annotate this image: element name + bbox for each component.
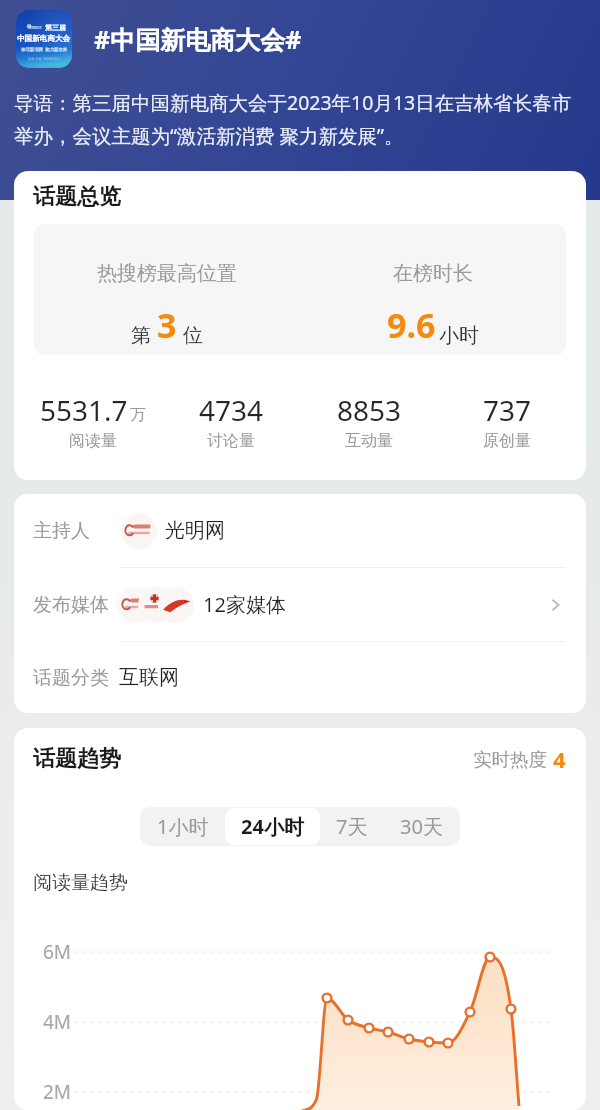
staticText: 话题分类 [33,666,109,690]
staticText: 实时热度 [473,748,547,771]
button[interactable]: 7天 [320,808,384,845]
staticText: 激活新消费 聚力新发展 [21,46,68,52]
staticText: 9.6 [387,302,436,348]
button[interactable]: 查看发布媒体 [542,592,568,618]
staticText: 8853 [337,391,402,429]
staticText: 话题趋势 [33,745,121,773]
staticText: 吉林 长春 2023年10月 [28,57,61,61]
staticText: 4M [43,1009,72,1035]
staticText: 导语：第三届中国新电商大会于2023年10月13日在吉林省长春市举办，会议主题为… [14,89,586,149]
button[interactable]: 24小时 [225,808,320,845]
staticText: 发布媒体 [33,593,109,617]
staticText: CNECC [30,25,42,30]
button[interactable]: 主持人 [14,494,586,567]
staticText: 光明网 [165,518,225,543]
button[interactable]: 话题封面 [16,10,72,68]
staticText: 话题总览 [33,183,121,211]
staticText: 互动量 [345,431,393,451]
staticText: 互联网 [119,665,179,690]
button[interactable]: 话题封面 [0,10,600,68]
staticText: 4 [553,744,566,774]
staticText: 3 [157,302,177,348]
staticText: 30天 [400,813,443,840]
staticText: 12家媒体 [203,591,286,618]
staticText: 万 [130,405,146,425]
staticText: 737 [483,391,532,429]
staticText: 第三届 [45,23,66,32]
staticText: 6M [43,939,72,965]
staticText: 4734 [199,391,264,429]
staticText: 小时 [439,323,479,348]
staticText: 阅读量趋势 [33,871,128,895]
staticText: 热搜榜最高位置 [97,261,237,286]
staticText: 24小时 [241,813,304,840]
staticText: 主持人 [33,519,90,543]
button[interactable]: 发布媒体 [14,568,586,641]
staticText: 7天 [336,813,368,840]
staticText: 位 [183,323,203,348]
staticText: 1小时 [157,813,209,840]
button[interactable]: 30天 [384,808,459,845]
staticText: 第 [131,323,151,348]
staticText: 5531.7 [40,391,128,429]
staticText: #中国新电商大会# [94,22,302,56]
button[interactable]: 话题分类 [14,642,586,713]
staticText: 在榜时长 [393,261,473,286]
staticText: 阅读量 [69,431,117,451]
staticText: 原创量 [483,431,531,451]
button[interactable]: 1小时 [141,808,225,845]
staticText: 中国新电商大会 [17,34,71,44]
staticText: 2M [43,1079,72,1105]
staticText: 讨论量 [207,431,255,451]
